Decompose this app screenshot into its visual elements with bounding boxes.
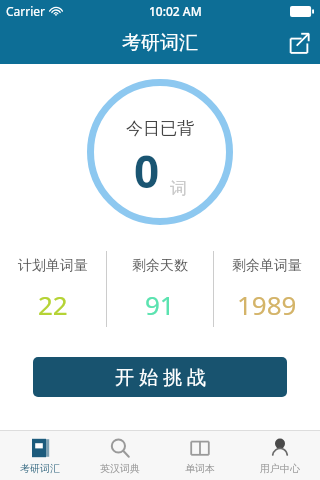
button[interactable]: 用户中心 — [240, 431, 320, 480]
staticText: 0 — [134, 141, 160, 201]
button[interactable]: 单词本 — [160, 431, 240, 480]
staticText: 考研词汇 — [122, 31, 198, 55]
button[interactable]: 考研词汇 — [0, 431, 80, 480]
button[interactable]: 剩余单词量 — [214, 239, 320, 339]
button[interactable]: 剩余天数 — [107, 239, 213, 339]
staticText: 用户中心 — [260, 462, 300, 475]
staticText: 开 始 挑 战 — [115, 364, 206, 390]
staticText: 1989 — [237, 287, 297, 322]
button[interactable]: 英汉词典 — [80, 431, 160, 480]
staticText: 考研词汇 — [20, 462, 60, 475]
staticText: 英汉词典 — [100, 462, 140, 475]
button[interactable]: Share — [278, 22, 320, 64]
button[interactable]: 开 始 挑 战 — [33, 357, 287, 397]
staticText: 词 — [170, 178, 187, 199]
staticText: 剩余单词量 — [232, 257, 302, 275]
staticText: 单词本 — [185, 462, 215, 475]
staticText: 计划单词量 — [18, 257, 88, 275]
staticText: 10:02 AM — [149, 3, 202, 19]
staticText: 剩余天数 — [132, 257, 188, 275]
staticText: Carrier — [6, 3, 46, 19]
button[interactable]: 计划单词量 — [0, 239, 106, 339]
staticText: 22 — [38, 287, 68, 322]
staticText: 91 — [145, 287, 175, 322]
staticText: 今日已背 — [126, 118, 194, 139]
